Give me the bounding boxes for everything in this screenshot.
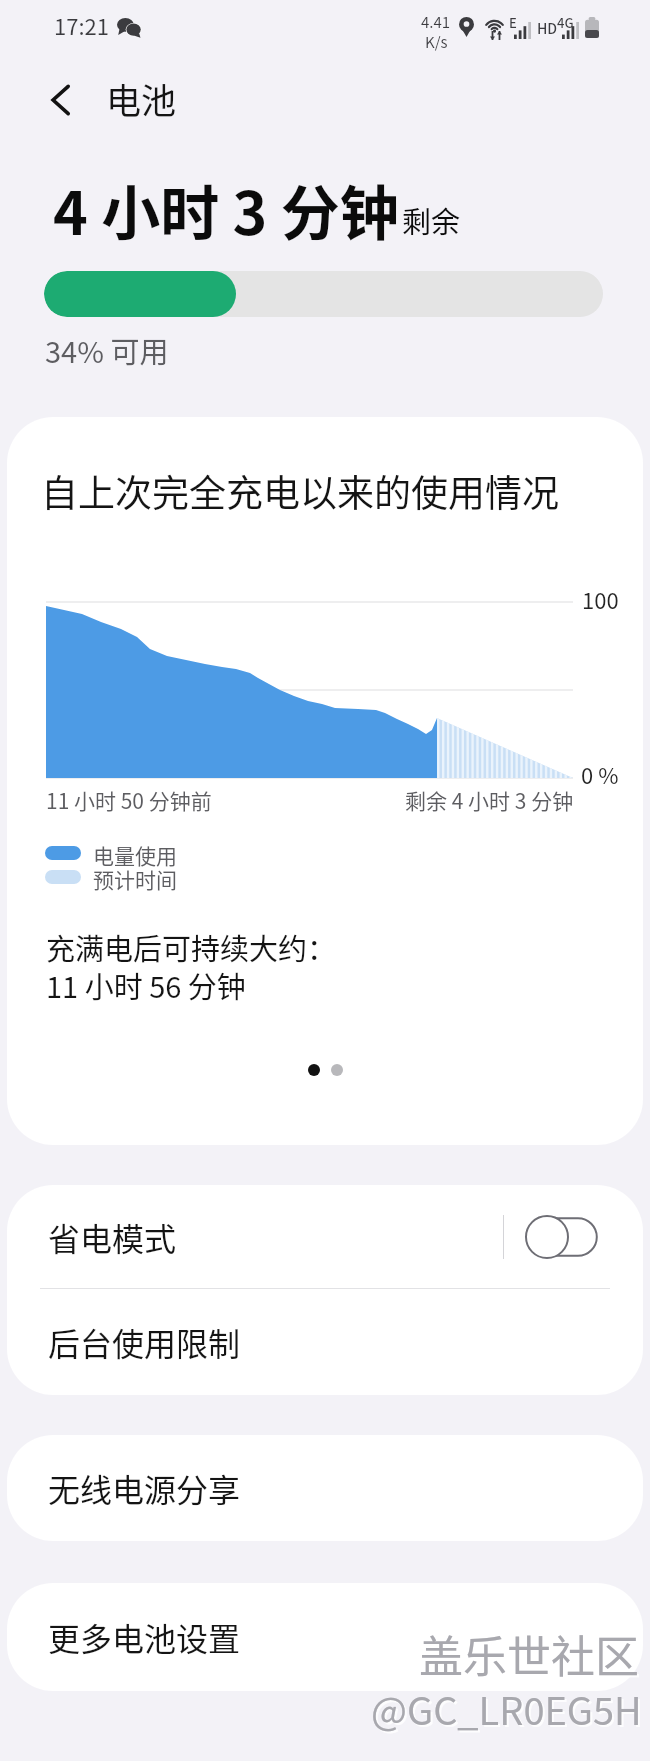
staticText: 后台使用限制 [48, 1319, 241, 1365]
staticText: 预计时间 [93, 864, 177, 894]
staticText: 100 [582, 583, 619, 615]
staticText: 电量使用 [93, 840, 177, 870]
staticText: 自上次完全充电以来的使用情况 [41, 464, 559, 518]
staticText: 剩余 4 小时 3 分钟 [405, 785, 574, 815]
staticText: 电池 [106, 73, 177, 124]
staticText: 11 小时 50 分钟前 [46, 785, 212, 815]
staticText: 盖乐世社区 [419, 1622, 639, 1686]
staticText: @GC_LR0EG5H [371, 1681, 642, 1736]
staticText: 34% 可用 [45, 329, 169, 371]
button[interactable]: 后台使用限制 [7, 1289, 643, 1395]
staticText: 充满电后可持续大约： [46, 926, 337, 968]
button[interactable]: 更多电池设置 [7, 1583, 643, 1691]
button[interactable]: Power saving toggle, off [526, 1215, 598, 1259]
staticText: 4.41 [421, 11, 451, 33]
staticText: 4 小时 3 分钟 [53, 167, 399, 252]
staticText: E [509, 13, 517, 32]
button[interactable]: 无线电源分享 [7, 1435, 643, 1541]
button[interactable]: 省电模式 [7, 1185, 643, 1288]
staticText: K/s [425, 31, 448, 53]
staticText: 无线电源分享 [48, 1465, 241, 1511]
staticText: 17:21 [54, 9, 109, 41]
staticText: 盖乐世社区 [421, 1624, 641, 1688]
staticText: 4G [557, 13, 574, 32]
staticText: @GC_LR0EG5H [373, 1683, 644, 1738]
staticText: 省电模式 [48, 1214, 503, 1260]
button[interactable]: Back [29, 68, 93, 132]
staticText: HD [537, 18, 558, 38]
staticText: 11 小时 56 分钟 [46, 964, 246, 1006]
staticText: 0 % [581, 758, 619, 790]
staticText: 剩余 [402, 199, 461, 241]
staticText: 更多电池设置 [48, 1614, 241, 1660]
